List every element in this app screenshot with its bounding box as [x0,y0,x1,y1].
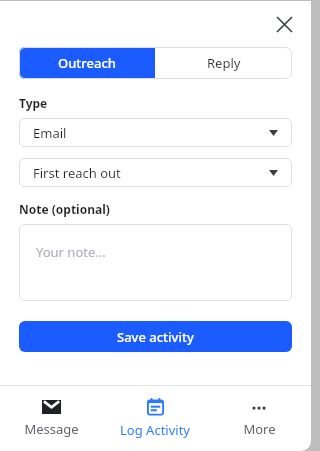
button[interactable]: Reply [155,47,292,79]
button[interactable]: More [207,386,311,451]
button[interactable]: Your note... [19,224,292,301]
staticText: Save activity [117,328,194,346]
other: Message [42,400,61,414]
staticText: Type [19,95,48,111]
staticText: Email [33,124,67,142]
button[interactable]: Log Activity [103,386,207,451]
staticText: Your note... [36,243,106,261]
staticText: More [243,420,276,438]
other: Log Activity [147,398,164,415]
other: More [250,400,268,414]
staticText: First reach out [33,164,121,182]
staticText: Message [24,420,79,438]
button[interactable]: Save activity [19,321,292,352]
staticText: Reply [207,54,241,72]
button[interactable]: Close [267,7,301,41]
button[interactable]: Message [0,386,103,451]
button[interactable]: First reach out [19,158,292,187]
button[interactable]: Outreach [19,47,155,79]
staticText: Note (optional) [19,201,110,217]
staticText: Log Activity [120,421,190,439]
staticText: Outreach [58,54,116,72]
button[interactable]: Email [19,118,292,147]
